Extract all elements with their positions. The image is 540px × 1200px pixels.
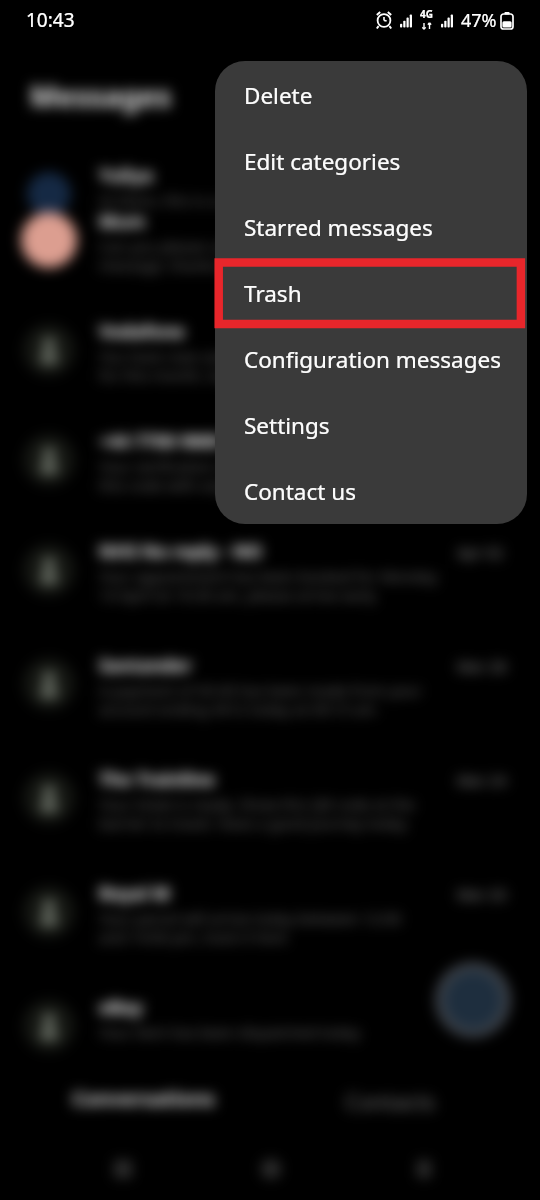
staticText: Apr 09 xyxy=(457,322,504,342)
staticText: Royal M xyxy=(99,881,170,906)
button[interactable]: Royal M xyxy=(0,872,540,952)
staticText: NHS No reply - NO xyxy=(99,539,263,564)
button[interactable]: Conversations xyxy=(0,1070,270,1130)
staticText: You have now used 80% of your data allow… xyxy=(99,346,432,385)
staticText: Your ticket is ready. Show this QR code … xyxy=(99,794,415,833)
staticText: Delete xyxy=(244,80,313,111)
button[interactable]: Starred messages xyxy=(215,194,527,260)
staticText: Mar 18 xyxy=(457,998,507,1018)
button[interactable]: New conversation xyxy=(437,968,509,1040)
staticText: Your verification code is 482915. Do not… xyxy=(99,456,421,495)
staticText: eBay xyxy=(99,995,143,1020)
staticText: Settings xyxy=(244,410,330,441)
button[interactable]: Delete xyxy=(215,62,527,128)
staticText: Yuliya xyxy=(99,163,154,188)
staticText: Edit categories xyxy=(244,146,401,177)
staticText: Trash xyxy=(244,278,302,309)
staticText: Starred messages xyxy=(244,212,433,243)
staticText: Messages xyxy=(30,76,172,115)
button[interactable]: eBay xyxy=(0,986,540,1066)
staticText: The Trainline xyxy=(99,767,215,792)
staticText: +44 7700 9005 xyxy=(99,429,222,454)
staticText: Your appointment has been booked for Mon… xyxy=(99,566,438,605)
staticText: Mar 28 xyxy=(457,656,507,676)
button[interactable]: Mum xyxy=(0,200,540,280)
staticText: A payment of 45.00 has been made from yo… xyxy=(99,680,422,719)
staticText: Configuration messages xyxy=(244,344,501,375)
button[interactable]: +44 7700 9005 xyxy=(0,420,540,500)
staticText: Santander xyxy=(99,653,192,678)
button[interactable]: Contacts xyxy=(270,1070,540,1130)
button[interactable]: Trash xyxy=(215,260,527,326)
button[interactable]: Yuliya xyxy=(0,154,540,234)
button[interactable]: Vodafone xyxy=(0,310,540,390)
staticText: Hi there, this is a short text xyxy=(99,190,289,210)
button[interactable]: Home xyxy=(180,1140,360,1200)
button[interactable]: Configuration messages xyxy=(215,326,527,392)
staticText: 47% xyxy=(461,8,497,33)
button[interactable]: Edit categories xyxy=(215,128,527,194)
staticText: Your parcel will arrive today between 12… xyxy=(99,908,402,947)
button[interactable]: Back xyxy=(360,1140,540,1200)
button[interactable]: The Trainline xyxy=(0,758,540,838)
button[interactable]: Recent apps xyxy=(0,1140,180,1200)
staticText: Conversations xyxy=(72,1085,215,1112)
button[interactable]: Contact us xyxy=(215,458,527,524)
staticText: 10:43 xyxy=(26,7,75,33)
button[interactable]: Settings xyxy=(215,392,527,458)
button[interactable]: Santander xyxy=(0,644,540,724)
staticText: 4G xyxy=(420,7,433,21)
button[interactable]: NHS No reply - NO xyxy=(0,530,540,610)
staticText: Mum xyxy=(99,209,146,234)
staticText: Contact us xyxy=(244,476,356,507)
staticText: Contacts xyxy=(345,1086,436,1116)
staticText: Your item has been dispatched today xyxy=(99,1022,361,1042)
staticText: Can you please call me back when you get… xyxy=(99,236,426,275)
staticText: Apr 02 xyxy=(457,542,504,562)
staticText: Vodafone xyxy=(99,319,185,344)
staticText: Mar 24 xyxy=(457,770,507,790)
staticText: Mar 20 xyxy=(457,884,507,904)
